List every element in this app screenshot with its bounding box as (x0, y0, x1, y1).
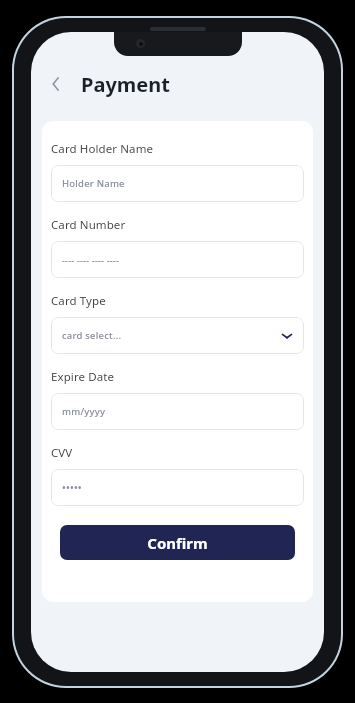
staticText: Card Number (51, 217, 126, 233)
staticText: Payment (81, 71, 170, 98)
button[interactable]: Back (43, 71, 69, 97)
staticText: ••••• (62, 481, 293, 495)
button[interactable]: Expire date field (51, 393, 304, 430)
staticText: Holder Name (62, 177, 293, 190)
staticText: Card Holder Name (51, 141, 154, 157)
staticText: mm/yyyy (62, 405, 293, 418)
staticText: card select... (62, 329, 281, 342)
button[interactable]: Confirm (60, 525, 295, 560)
staticText: CVV (51, 445, 73, 461)
button[interactable]: CVV field (51, 469, 304, 506)
staticText: Card Type (51, 293, 106, 309)
button[interactable]: Card number field (51, 241, 304, 278)
staticText: Confirm (147, 533, 208, 553)
button[interactable]: Card type selector (51, 317, 304, 354)
staticText: Expire Date (51, 369, 115, 385)
button[interactable]: Card holder name field (51, 165, 304, 202)
staticText: ---- ---- ---- ---- (62, 254, 293, 266)
